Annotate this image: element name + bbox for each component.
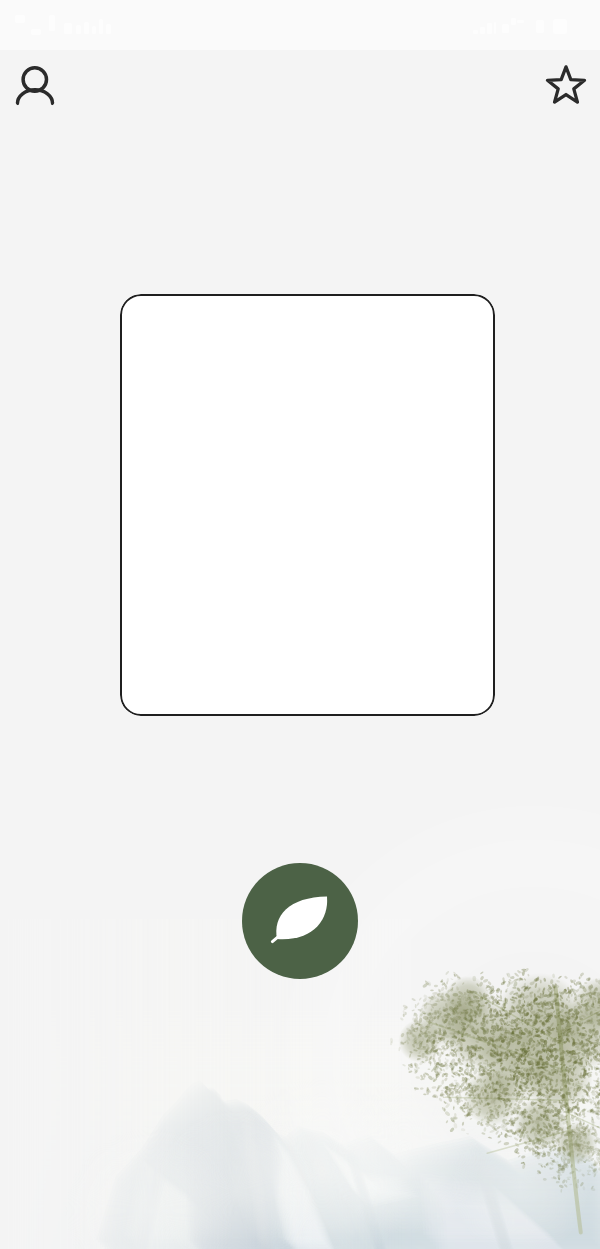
button[interactable]: Add plant — [242, 863, 358, 979]
button[interactable]: Favorite — [540, 59, 592, 111]
button[interactable] — [120, 294, 495, 716]
button[interactable]: Account — [9, 60, 61, 112]
